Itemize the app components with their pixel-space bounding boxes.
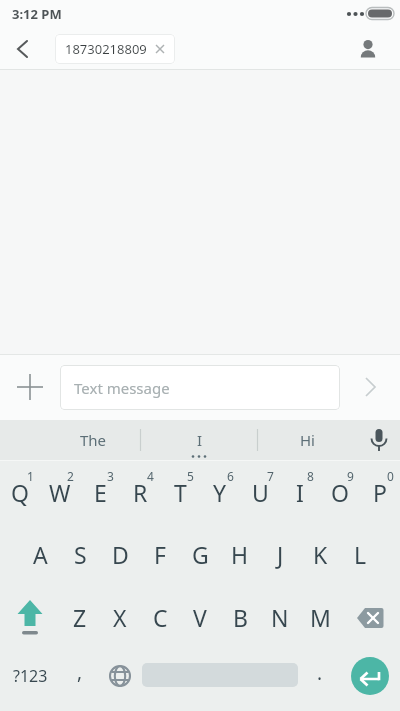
button[interactable] (354, 35, 382, 63)
button[interactable]: E (80, 461, 120, 523)
staticText: . (317, 660, 323, 686)
button[interactable]: P (360, 461, 400, 523)
staticText: G (192, 539, 209, 570)
staticText: U (252, 477, 269, 508)
staticText: I (296, 477, 304, 508)
staticText: M (310, 602, 331, 633)
staticText: N (271, 602, 289, 633)
staticText: Hi (300, 430, 315, 450)
staticText: 7 (267, 468, 274, 484)
button[interactable]: D (100, 523, 140, 586)
staticText: Text message (74, 378, 170, 398)
button[interactable]: H (220, 523, 260, 586)
staticText: Q (11, 477, 29, 508)
staticText: 18730218809 (65, 40, 147, 58)
button[interactable]: M (300, 586, 340, 649)
button[interactable]: J (260, 523, 300, 586)
staticText: 1 (27, 468, 34, 484)
button[interactable]: C (140, 586, 180, 649)
staticText: C (153, 602, 168, 633)
staticText: H (231, 539, 249, 570)
button[interactable]: W (40, 461, 80, 523)
staticText: L (354, 539, 367, 570)
staticText: ?123 (13, 665, 48, 687)
staticText: F (154, 539, 166, 570)
button[interactable]: The (63, 420, 123, 460)
button[interactable]: T (160, 461, 200, 523)
button[interactable] (364, 425, 394, 455)
button[interactable]: Text message (60, 365, 340, 410)
button[interactable] (0, 586, 60, 649)
staticText: P (373, 477, 387, 508)
button[interactable] (340, 354, 400, 420)
button[interactable]: . (300, 649, 340, 711)
button[interactable]: O (320, 461, 360, 523)
staticText: 0 (387, 468, 394, 484)
button[interactable]: Q (0, 461, 40, 523)
button[interactable]: L (340, 523, 380, 586)
staticText: 6 (227, 468, 234, 484)
staticText: 8 (307, 468, 314, 484)
button[interactable]: ?123 (0, 649, 60, 711)
staticText: D (112, 539, 129, 570)
staticText: 2 (67, 468, 74, 484)
button[interactable] (8, 35, 36, 63)
staticText: K (313, 539, 328, 570)
button[interactable]: V (180, 586, 220, 649)
button[interactable] (0, 354, 60, 420)
staticText: O (331, 477, 349, 508)
staticText: , (77, 659, 83, 685)
staticText: T (174, 477, 187, 508)
button[interactable]: X (100, 586, 140, 649)
staticText: J (277, 539, 284, 570)
button[interactable]: R (120, 461, 160, 523)
staticText: 4 (147, 468, 154, 484)
staticText: S (74, 539, 87, 570)
button[interactable]: , (60, 649, 100, 711)
button[interactable]: F (140, 523, 180, 586)
staticText: 3 (107, 468, 114, 484)
button[interactable]: Hi (277, 420, 337, 460)
staticText: R (133, 477, 148, 508)
button[interactable]: I (170, 420, 230, 460)
staticText: 9 (347, 468, 354, 484)
staticText: V (193, 602, 207, 633)
button[interactable]: K (300, 523, 340, 586)
button[interactable]: G (180, 523, 220, 586)
button[interactable]: N (260, 586, 300, 649)
button[interactable]: A (20, 523, 60, 586)
staticText: X (113, 602, 127, 633)
staticText: B (233, 602, 248, 633)
button[interactable] (351, 657, 389, 695)
button[interactable]: B (220, 586, 260, 649)
staticText: E (94, 477, 107, 508)
button[interactable]: Y (200, 461, 240, 523)
staticText: W (49, 477, 71, 508)
button[interactable]: I (280, 461, 320, 523)
staticText: Z (73, 602, 87, 633)
button[interactable]: U (240, 461, 280, 523)
button[interactable]: 18730218809 (55, 34, 175, 64)
staticText: I (197, 430, 203, 450)
button[interactable]: S (60, 523, 100, 586)
staticText: Y (213, 477, 227, 508)
button[interactable] (340, 586, 400, 649)
button[interactable] (100, 649, 140, 711)
button[interactable]: Z (60, 586, 100, 649)
staticText: The (80, 430, 107, 450)
staticText: 5 (187, 468, 194, 484)
staticText: 3:12 PM (12, 5, 62, 23)
staticText: A (33, 539, 48, 570)
